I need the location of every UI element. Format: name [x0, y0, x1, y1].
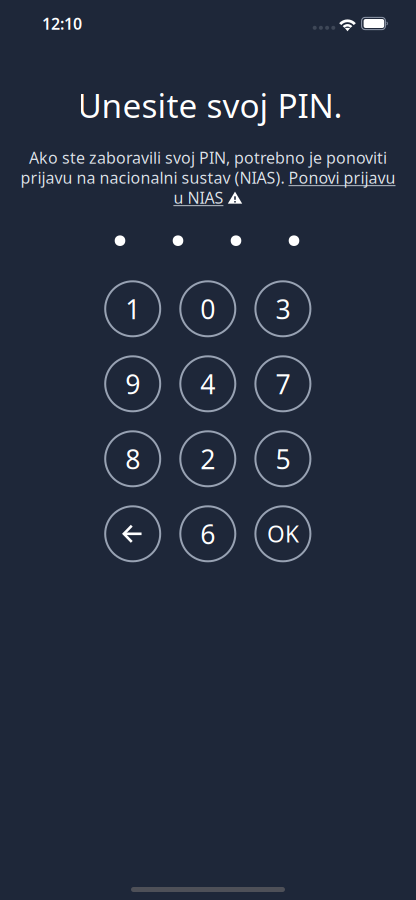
- staticText: prijavu na nacionalni sustav (NIAS). Pon…: [20, 167, 395, 188]
- button[interactable]: 9: [105, 356, 160, 411]
- button[interactable]: 5: [255, 431, 310, 486]
- button[interactable]: 3: [255, 281, 310, 336]
- staticText: 5: [275, 441, 290, 476]
- button[interactable]: 6: [180, 506, 235, 561]
- staticText: 9: [125, 366, 140, 401]
- button[interactable]: 8: [105, 431, 160, 486]
- staticText: 1: [125, 291, 140, 326]
- button[interactable]: 4: [180, 356, 235, 411]
- button[interactable]: prijavu na nacionalni sustav (NIAS). Pon…: [20, 167, 395, 187]
- button[interactable]: 7: [255, 356, 310, 411]
- staticText: Unesite svoj PIN.: [77, 83, 342, 127]
- button[interactable]: OK: [255, 506, 310, 561]
- button[interactable]: 0: [180, 281, 235, 336]
- staticText: 4: [200, 366, 215, 401]
- staticText: u NIAS: [173, 187, 223, 208]
- staticText: 7: [275, 366, 290, 401]
- staticText: 0: [200, 291, 215, 326]
- staticText: 12:10: [42, 13, 82, 34]
- staticText: 8: [125, 441, 140, 476]
- staticText: 3: [275, 291, 290, 326]
- button[interactable]: Delete: [105, 506, 160, 561]
- staticText: 2: [200, 441, 215, 476]
- staticText: 6: [200, 516, 215, 551]
- staticText: Ako ste zaboravili svoj PIN, potrebno je…: [29, 147, 387, 168]
- button[interactable]: u NIAS: [173, 187, 223, 208]
- staticText: OK: [267, 519, 299, 549]
- button[interactable]: 2: [180, 431, 235, 486]
- button[interactable]: 1: [105, 281, 160, 336]
